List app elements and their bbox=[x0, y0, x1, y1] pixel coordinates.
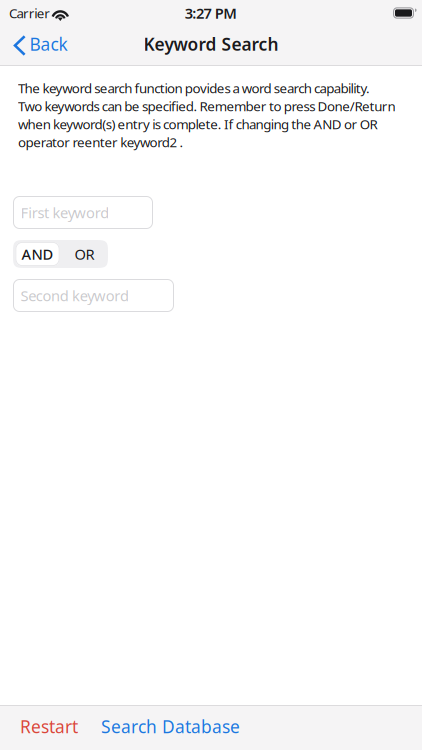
button[interactable]: AND bbox=[13, 240, 61, 268]
staticText: Search Database bbox=[101, 715, 240, 738]
staticText: Keyword Search bbox=[143, 32, 278, 55]
staticText: operator reenter keyword2 . bbox=[18, 133, 184, 151]
staticText: Back bbox=[29, 32, 67, 55]
staticText: AND bbox=[21, 244, 53, 264]
button[interactable]: First keyword bbox=[13, 196, 153, 229]
staticText: Second keyword bbox=[20, 286, 129, 305]
button[interactable]: Search Database bbox=[90, 706, 252, 750]
staticText: OR bbox=[74, 244, 94, 264]
staticText: Two keywords can be specified. Remember … bbox=[18, 97, 395, 115]
button[interactable]: Second keyword bbox=[13, 279, 174, 312]
button[interactable]: Restart bbox=[0, 706, 90, 750]
button[interactable]: Back bbox=[0, 26, 77, 65]
staticText: The keyword search function povides a wo… bbox=[18, 79, 370, 97]
staticText: Restart bbox=[20, 715, 78, 738]
staticText: First keyword bbox=[20, 203, 109, 222]
staticText: 3:27 PM bbox=[185, 3, 237, 23]
button[interactable]: OR bbox=[61, 240, 107, 268]
staticText: Carrier bbox=[9, 4, 50, 22]
staticText: when keyword(s) entry is complete. If ch… bbox=[18, 115, 377, 133]
